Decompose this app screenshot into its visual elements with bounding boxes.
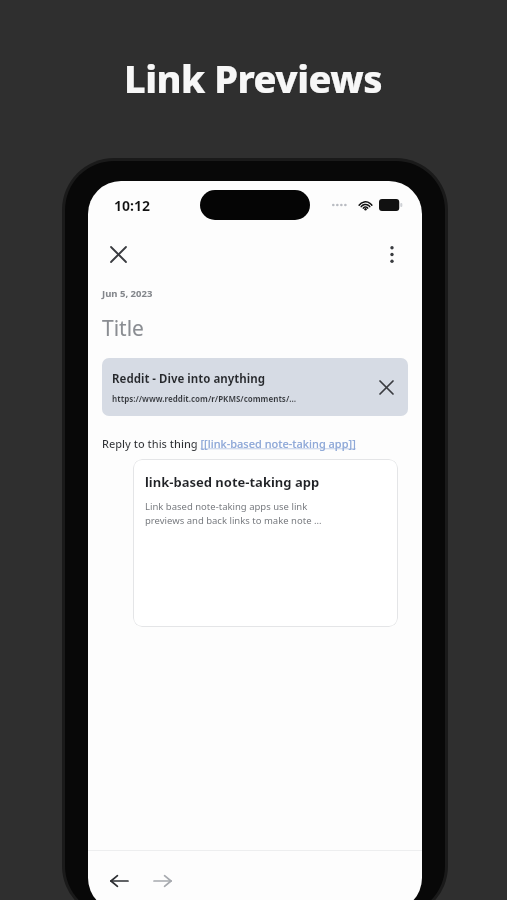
button[interactable]: Back	[102, 864, 136, 898]
button[interactable]: Close	[98, 234, 138, 274]
button[interactable]: Reddit - Dive into anything	[102, 358, 408, 416]
button[interactable]: Remove link preview	[370, 371, 402, 403]
staticText: Link based note-taking apps use link pre…	[145, 500, 322, 527]
staticText: https://www.reddit.com/r/PKMS/comments/…	[112, 393, 297, 404]
staticText: Reply to this thing [[link-based note-ta…	[102, 436, 356, 451]
staticText: Jun 5, 2023	[102, 287, 153, 300]
staticText: 10:12	[114, 196, 150, 215]
staticText: Title	[102, 314, 144, 343]
button[interactable]: Forward	[145, 864, 179, 898]
staticText: Reddit - Dive into anything	[112, 371, 265, 387]
staticText: link-based note-taking app	[145, 473, 320, 491]
button[interactable]: More options	[372, 234, 412, 274]
staticText: Link Previews	[124, 52, 383, 104]
button[interactable]: link-based note-taking app	[133, 459, 398, 627]
